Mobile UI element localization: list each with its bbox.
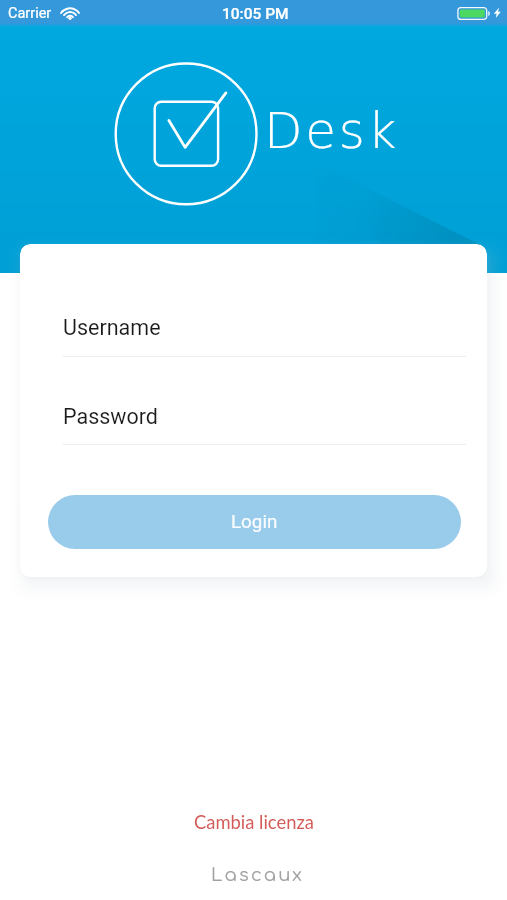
button[interactable]: Login bbox=[48, 495, 461, 549]
staticText: Login bbox=[231, 511, 278, 533]
button[interactable]: Cambia licenza bbox=[176, 805, 332, 839]
staticText: Lascaux bbox=[211, 865, 305, 885]
staticText: Password bbox=[63, 404, 158, 429]
button[interactable]: Username bbox=[63, 301, 466, 357]
staticText: 10:05 PM bbox=[222, 5, 289, 23]
staticText: Carrier bbox=[8, 5, 52, 22]
button[interactable]: Password bbox=[63, 389, 466, 445]
staticText: Username bbox=[63, 315, 161, 340]
staticText: Cambia licenza bbox=[194, 811, 314, 833]
staticText: Desk bbox=[264, 102, 400, 160]
